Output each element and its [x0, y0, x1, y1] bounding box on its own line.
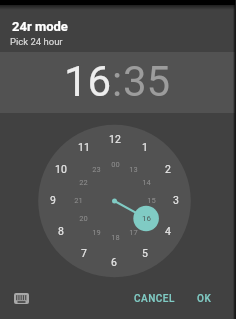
- staticText: 14: [142, 178, 151, 187]
- staticText: 11: [78, 141, 90, 153]
- staticText: 7: [81, 247, 87, 259]
- staticText: OK: [197, 293, 212, 305]
- button[interactable]: [9, 288, 33, 308]
- staticText: 9: [50, 194, 56, 206]
- staticText: 4: [165, 225, 171, 237]
- staticText: Pick 24 hour: [10, 36, 63, 47]
- staticText: 1: [142, 141, 148, 153]
- staticText: 6: [111, 256, 117, 268]
- staticText: :: [112, 57, 123, 106]
- staticText: 13: [129, 165, 138, 174]
- staticText: 3: [173, 194, 179, 206]
- staticText: CANCEL: [134, 293, 175, 305]
- staticText: 17: [129, 228, 138, 237]
- staticText: 22: [79, 178, 88, 187]
- staticText: 00: [111, 160, 120, 169]
- button[interactable]: OK: [189, 289, 220, 309]
- staticText: 15: [147, 196, 156, 205]
- staticText: 2: [165, 163, 171, 175]
- staticText: 20: [79, 214, 88, 223]
- staticText: 16: [142, 214, 151, 223]
- staticText: 12: [109, 133, 121, 145]
- staticText: 24r mode: [12, 19, 68, 33]
- staticText: 16: [64, 57, 112, 106]
- staticText: 18: [111, 233, 120, 242]
- button[interactable]: CANCEL: [126, 289, 182, 309]
- staticText: 35: [123, 57, 171, 106]
- staticText: 5: [142, 247, 148, 259]
- staticText: 21: [74, 196, 83, 205]
- staticText: 19: [92, 228, 101, 237]
- staticText: 8: [58, 225, 64, 237]
- staticText: 10: [55, 163, 67, 175]
- staticText: 23: [92, 165, 101, 174]
